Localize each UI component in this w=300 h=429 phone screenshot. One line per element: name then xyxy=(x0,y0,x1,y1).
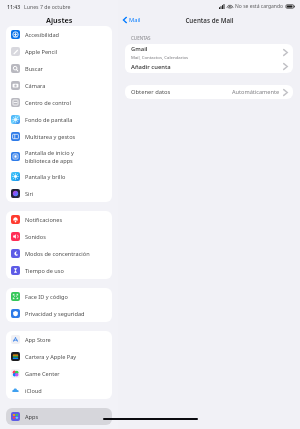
staticText: Privacidad y seguridad xyxy=(25,310,85,318)
button[interactable]: Notificaciones xyxy=(6,211,112,228)
staticText: Automáticamente xyxy=(232,88,280,96)
staticText: CUENTAS xyxy=(131,35,151,41)
button[interactable]: Buscar xyxy=(6,60,112,77)
staticText: Notificaciones xyxy=(25,216,63,224)
staticText: Añadir cuenta xyxy=(131,63,171,71)
staticText: 11:43 xyxy=(7,3,21,10)
button[interactable]: Obtener datos xyxy=(125,85,293,99)
staticText: Cámara xyxy=(25,82,46,90)
staticText: Apps xyxy=(25,413,39,421)
staticText: Buscar xyxy=(25,65,43,73)
button[interactable]: iCloud xyxy=(6,382,112,399)
staticText: Sonidos xyxy=(25,233,46,241)
button[interactable]: App Store xyxy=(6,331,112,348)
staticText: Face ID y código xyxy=(25,293,68,301)
button[interactable]: Fondo de pantalla xyxy=(6,111,112,128)
staticText: Fondo de pantalla xyxy=(25,116,73,124)
staticText: App Store xyxy=(25,336,51,344)
button[interactable]: Sonidos xyxy=(6,228,112,245)
button[interactable]: Accesibilidad xyxy=(6,26,112,43)
staticText: iCloud xyxy=(25,387,42,395)
staticText: Gmail xyxy=(131,45,148,53)
other: Home indicator xyxy=(103,418,198,420)
button[interactable]: Modos de concentración xyxy=(6,245,112,262)
staticText: Lunes 7 de octubre xyxy=(24,3,71,10)
button[interactable]: Cámara xyxy=(6,77,112,94)
button[interactable]: Centro de control xyxy=(6,94,112,111)
button[interactable]: Apps xyxy=(6,408,112,425)
staticText: biblioteca de apps xyxy=(25,157,73,165)
button[interactable]: Siri xyxy=(6,185,112,202)
staticText: Ajustes xyxy=(46,15,73,25)
staticText: Mail, Contactos, Calendarios xyxy=(131,54,189,60)
button[interactable]: Apple Pencil xyxy=(6,43,112,60)
button[interactable]: Mail xyxy=(121,14,143,26)
staticText: Cartera y Apple Pay xyxy=(25,353,77,361)
staticText: Pantalla de inicio y xyxy=(25,149,74,157)
staticText: Pantalla y brillo xyxy=(25,173,66,181)
staticText: Siri xyxy=(25,190,34,198)
staticText: Apple Pencil xyxy=(25,48,58,56)
button[interactable]: Añadir cuenta xyxy=(125,60,293,73)
button[interactable]: Pantalla de inicio y xyxy=(6,145,112,168)
staticText: No se está cargando xyxy=(235,3,284,10)
button[interactable]: Pantalla y brillo xyxy=(6,168,112,185)
button[interactable]: Cartera y Apple Pay xyxy=(6,348,112,365)
button[interactable]: Face ID y código xyxy=(6,288,112,305)
staticText: Game Center xyxy=(25,370,60,378)
staticText: Multitarea y gestos xyxy=(25,133,76,141)
button[interactable]: Gmail xyxy=(125,44,293,60)
staticText: Cuentas de Mail xyxy=(185,16,234,24)
staticText: Obtener datos xyxy=(131,88,171,96)
staticText: Mail xyxy=(129,16,141,24)
staticText: Accesibilidad xyxy=(25,31,60,39)
button[interactable]: Multitarea y gestos xyxy=(6,128,112,145)
button[interactable]: Privacidad y seguridad xyxy=(6,305,112,322)
staticText: Modos de concentración xyxy=(25,250,90,258)
button[interactable]: Game Center xyxy=(6,365,112,382)
staticText: Tiempo de uso xyxy=(25,267,64,275)
staticText: Centro de control xyxy=(25,99,71,107)
button[interactable]: Tiempo de uso xyxy=(6,262,112,279)
